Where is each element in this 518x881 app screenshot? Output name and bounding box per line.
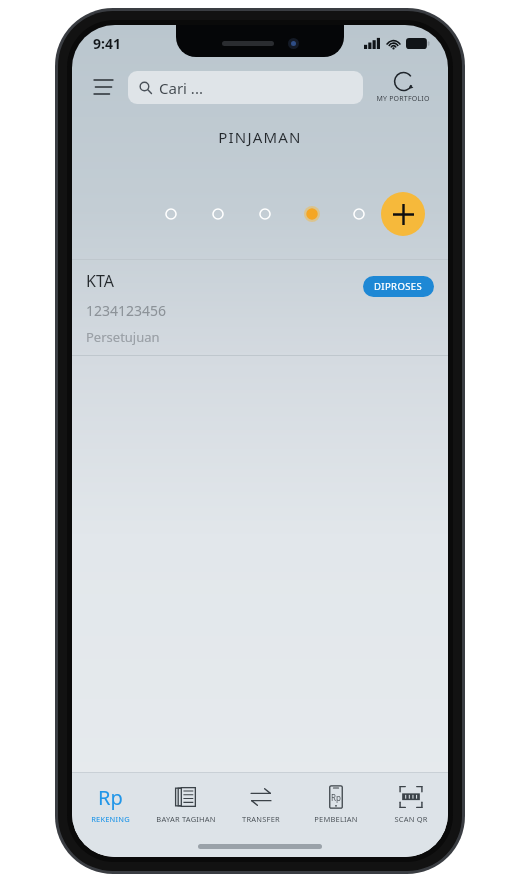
button[interactable]: Rp bbox=[298, 773, 373, 835]
button[interactable]: Cari ... bbox=[128, 71, 363, 104]
staticText: KTA bbox=[86, 270, 114, 292]
button[interactable]: Add bbox=[381, 192, 425, 236]
button[interactable]: Rp bbox=[72, 773, 148, 835]
staticText: TRANSFER bbox=[242, 814, 280, 824]
staticText: Rp bbox=[331, 792, 341, 803]
button[interactable]: Page 5 bbox=[344, 199, 374, 229]
staticText: Cari ... bbox=[159, 78, 203, 98]
staticText: PINJAMAN bbox=[72, 127, 448, 147]
button[interactable]: Menu bbox=[86, 70, 120, 104]
button[interactable]: SCAN QR bbox=[373, 773, 448, 835]
staticText: REKENING bbox=[91, 814, 130, 824]
staticText: 9:41 bbox=[93, 34, 121, 53]
button[interactable]: Page 4 bbox=[297, 199, 327, 229]
staticText: Rp bbox=[98, 784, 123, 810]
staticText: BAYAR TAGIHAN bbox=[156, 814, 216, 824]
staticText: SCAN QR bbox=[394, 814, 428, 824]
button[interactable]: DIPROSES bbox=[363, 276, 434, 297]
staticText: MY PORTFOLIO bbox=[376, 94, 430, 104]
button[interactable]: TRANSFER bbox=[223, 773, 298, 835]
button[interactable]: Page 3 bbox=[250, 199, 280, 229]
staticText: PEMBELIAN bbox=[314, 814, 358, 824]
button[interactable]: BAYAR TAGIHAN bbox=[148, 773, 223, 835]
staticText: Persetujuan bbox=[86, 328, 160, 346]
button[interactable]: Page 2 bbox=[203, 199, 233, 229]
button[interactable]: KTA bbox=[72, 260, 448, 355]
button[interactable]: Page 1 bbox=[156, 199, 186, 229]
staticText: DIPROSES bbox=[374, 280, 423, 293]
button[interactable]: MY PORTFOLIO bbox=[372, 71, 434, 104]
staticText: 1234123456 bbox=[86, 301, 167, 320]
